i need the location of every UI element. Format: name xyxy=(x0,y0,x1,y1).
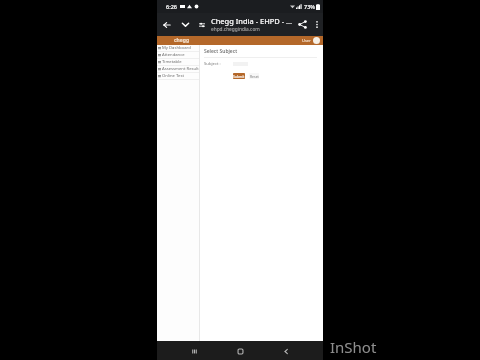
staticText: InShot xyxy=(330,337,377,357)
staticText: Attendance Details xyxy=(162,52,199,58)
button[interactable]: Share xyxy=(293,13,311,36)
staticText: My Dashboard xyxy=(162,45,191,51)
staticText: Online Test xyxy=(162,73,184,79)
button[interactable]: Collapse xyxy=(176,13,194,36)
button[interactable]: Timetable xyxy=(157,59,199,65)
button[interactable]: Submit xyxy=(233,73,245,79)
button[interactable]: Page info xyxy=(194,13,209,36)
staticText: Select Subject xyxy=(204,48,238,55)
staticText: Subject : xyxy=(204,61,221,67)
button[interactable]: Back xyxy=(157,13,176,36)
staticText: Reset xyxy=(250,74,259,79)
staticText: 6:26 xyxy=(166,3,177,10)
button[interactable]: My Dashboard xyxy=(157,45,199,51)
button[interactable]: Assessment Result xyxy=(157,66,199,72)
staticText: Chegg India - EHPD - ... xyxy=(211,16,293,26)
button[interactable]: Reset xyxy=(249,73,259,79)
staticText: Assessment Result xyxy=(162,66,199,72)
button[interactable]: Online Test xyxy=(157,73,199,79)
button[interactable]: Home xyxy=(231,342,249,360)
button[interactable]: More options xyxy=(311,13,323,36)
button[interactable]: Back xyxy=(277,342,295,360)
staticText: Timetable xyxy=(162,59,182,65)
staticText: Submit xyxy=(233,74,245,79)
staticText: 73% xyxy=(304,3,315,10)
button[interactable]: Recents xyxy=(185,342,203,360)
staticText: ehpd.cheggindia.com xyxy=(211,26,260,33)
staticText: User xyxy=(302,38,311,43)
button[interactable]: Attendance Details xyxy=(157,52,199,58)
staticText: chegg xyxy=(174,37,190,44)
